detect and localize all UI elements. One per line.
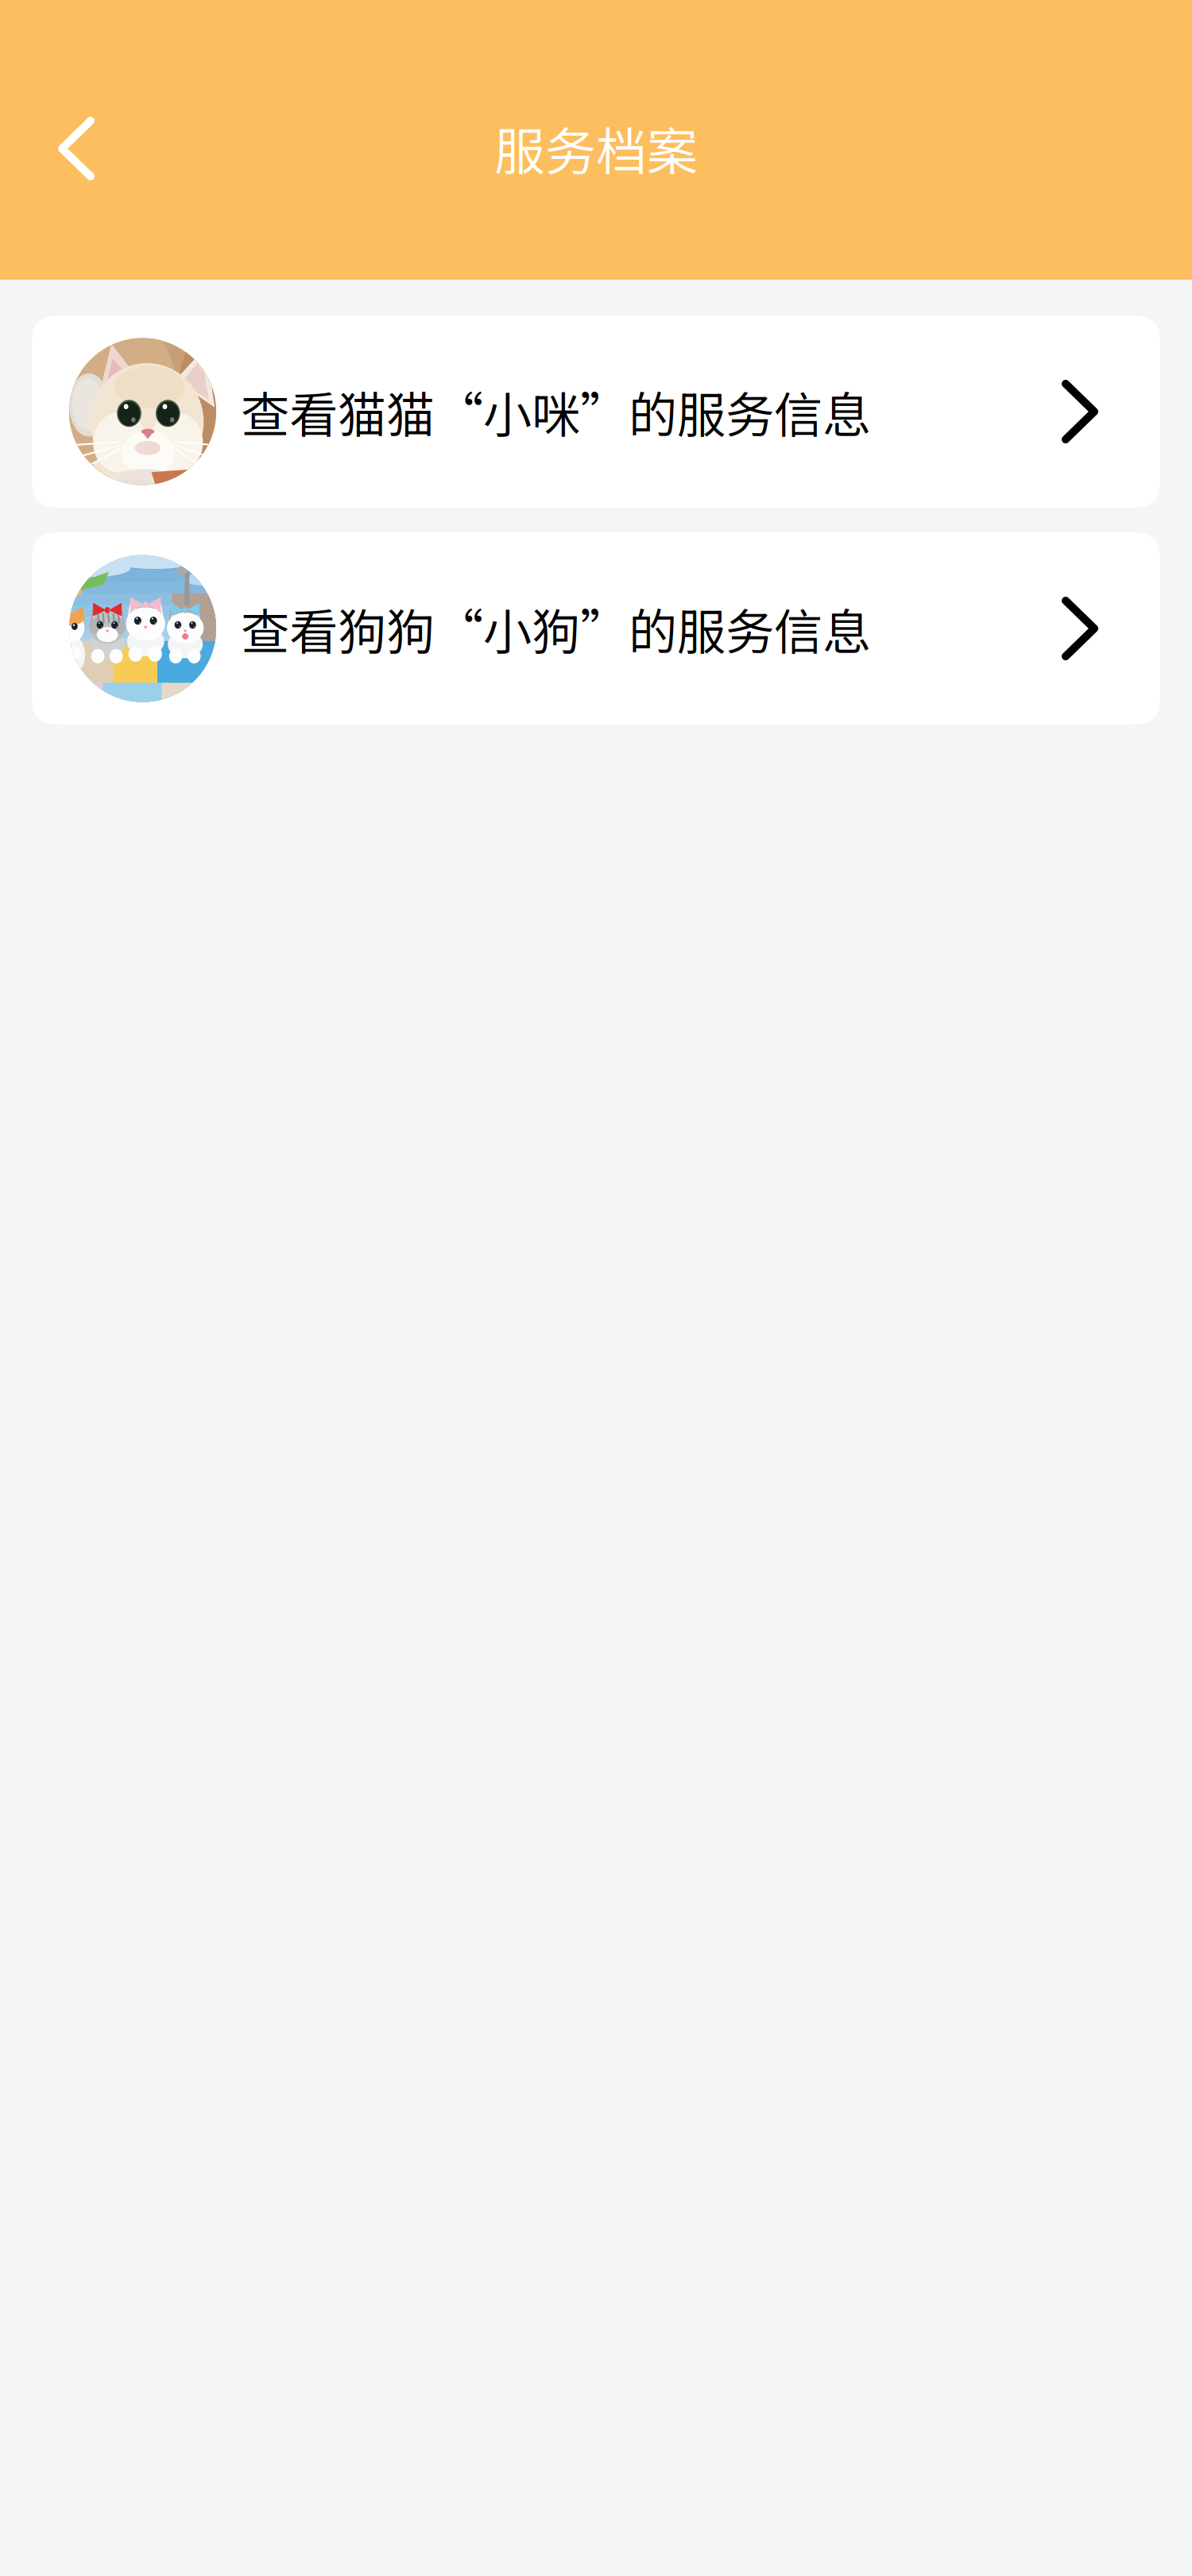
staticText: 查看猫猫“小咪”的服务信息 bbox=[241, 376, 871, 447]
staticText: 查看狗狗“小狗”的服务信息 bbox=[241, 593, 871, 664]
staticText: 服务档案 bbox=[494, 111, 698, 185]
button[interactable]: 查看猫猫“小咪”的服务信息 bbox=[32, 315, 1160, 508]
button[interactable]: 查看狗狗“小狗”的服务信息 bbox=[32, 532, 1160, 725]
button[interactable]: 返回 bbox=[0, 85, 126, 212]
